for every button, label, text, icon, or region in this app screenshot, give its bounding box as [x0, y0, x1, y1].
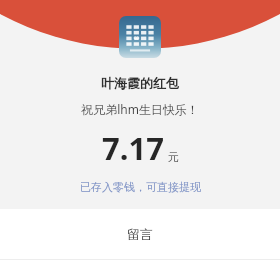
staticText: 叶海霞的红包	[101, 75, 179, 91]
staticText: 元	[168, 150, 179, 164]
button[interactable]: Sender avatar	[119, 16, 161, 58]
button[interactable]: 已存入零钱，可直接提现	[70, 178, 211, 196]
staticText: 祝兄弟lhm生日快乐！	[81, 101, 199, 117]
staticText: 7.17	[102, 127, 164, 169]
button[interactable]: 留言	[0, 209, 280, 259]
staticText: 已存入零钱，可直接提现	[80, 180, 201, 194]
staticText: 留言	[127, 226, 153, 242]
